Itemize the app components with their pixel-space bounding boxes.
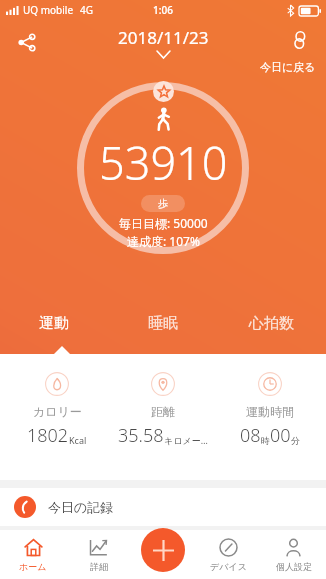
staticText: 分	[291, 435, 300, 446]
button[interactable]: Share	[8, 24, 44, 60]
button[interactable]: カロリー	[7, 372, 107, 448]
button[interactable]: 今日の記録	[0, 488, 326, 526]
button[interactable]: 運動	[0, 310, 108, 354]
staticText: 35.58	[118, 423, 164, 448]
button[interactable]: 睡眠	[108, 310, 217, 354]
staticText: 個人設定	[276, 561, 312, 572]
staticText: Kcal	[69, 434, 87, 446]
button[interactable]: デバイス	[196, 530, 261, 579]
staticText: 2018/11/23	[118, 26, 209, 49]
staticText: 歩	[158, 197, 168, 210]
staticText: 08	[240, 423, 261, 448]
staticText: 距離	[151, 404, 175, 419]
staticText: 1802	[27, 423, 69, 448]
staticText: 1:06	[153, 3, 173, 17]
button[interactable]: Add	[141, 528, 185, 572]
staticText: デバイス	[210, 561, 247, 572]
staticText: 詳細	[90, 561, 108, 572]
button[interactable]: 運動時間	[220, 372, 320, 448]
staticText: 睡眠	[148, 314, 178, 333]
button[interactable]: 詳細	[66, 530, 131, 579]
button[interactable]: Link device	[282, 22, 318, 58]
button[interactable]: 今日に戻る	[260, 60, 316, 74]
staticText: 今日の記録	[48, 499, 114, 515]
staticText: 心拍数	[249, 314, 294, 333]
staticText: カロリー	[33, 404, 82, 419]
staticText: ホーム	[19, 561, 47, 572]
staticText: 運動時間	[246, 404, 294, 419]
staticText: 毎日目標: 50000	[119, 215, 208, 231]
button[interactable]: 距離	[113, 372, 213, 448]
button[interactable]: 個人設定	[261, 530, 326, 579]
button[interactable]: ホーム	[0, 530, 66, 579]
staticText: キロメー…	[164, 434, 208, 446]
staticText: 達成度: 107%	[127, 233, 200, 249]
staticText: 4G	[80, 3, 93, 17]
button[interactable]: 2018/11/23	[118, 26, 209, 58]
staticText: 53910	[99, 132, 228, 193]
staticText: UQ mobile	[23, 3, 74, 17]
staticText: 時	[261, 435, 270, 446]
staticText: 00	[270, 423, 291, 448]
staticText: 運動	[39, 314, 69, 333]
button[interactable]: 心拍数	[217, 310, 326, 354]
